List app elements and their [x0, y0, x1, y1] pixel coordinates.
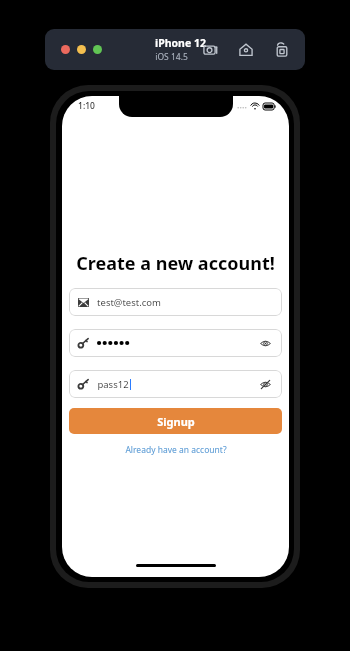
button[interactable]: Minimize: [77, 45, 86, 54]
staticText: iPhone 12: [155, 36, 206, 50]
staticText: test@test.com: [97, 296, 161, 309]
button[interactable]: Close: [61, 45, 70, 54]
button[interactable]: Show password: [69, 329, 282, 357]
button[interactable]: Signup: [69, 408, 282, 434]
staticText: Create a new account!: [76, 251, 275, 276]
button[interactable]: Home: [235, 39, 257, 61]
button[interactable]: Already have an account?: [121, 442, 231, 458]
staticText: iOS 14.5: [155, 51, 188, 63]
button[interactable]: pass12: [69, 370, 282, 398]
staticText: 1:10: [78, 100, 95, 112]
button[interactable]: Hide password: [257, 376, 273, 392]
staticText: pass12: [97, 378, 129, 391]
button[interactable]: Show password: [257, 335, 273, 351]
button[interactable]: Maximize: [93, 45, 102, 54]
staticText: Already have an account?: [125, 444, 227, 456]
button[interactable]: test@test.com: [69, 288, 282, 316]
button[interactable]: Rotate: [271, 39, 293, 61]
staticText: Signup: [157, 414, 195, 429]
button[interactable]: Screenshot: [199, 39, 221, 61]
